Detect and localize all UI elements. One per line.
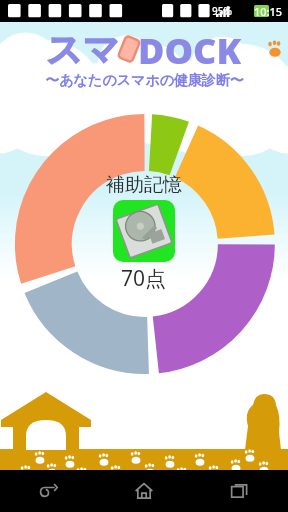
staticText: 〜あなたのスマホの健康診断〜 [45,72,244,90]
button[interactable]: 補助記憶 [79,173,209,293]
button[interactable]: Back [0,470,96,512]
button[interactable]: Recents [192,470,288,512]
staticText: 95% [212,4,232,18]
other: Storage [113,200,175,262]
staticText: 70点 [121,264,167,293]
staticText: スマ [46,27,120,72]
button[interactable]: Home [96,470,192,512]
staticText: 補助記憶 [106,173,182,197]
staticText: DOCK [138,26,242,72]
staticText: 10:15 [254,4,283,19]
